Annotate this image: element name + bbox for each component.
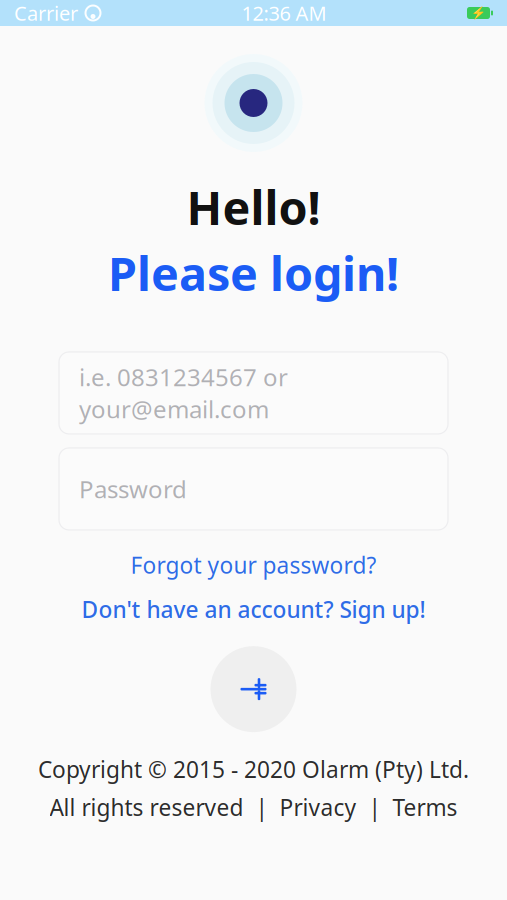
staticText: Copyright © 2015 - 2020 Olarm (Pty) Ltd.	[38, 754, 469, 784]
button[interactable]: Don't have an account? Sign up!	[71, 590, 435, 628]
button[interactable]: Forgot your password?	[120, 546, 386, 584]
staticText: Hello!	[186, 176, 320, 238]
staticText: Carrier	[14, 0, 78, 26]
staticText: Don't have an account? Sign up!	[81, 594, 425, 624]
staticText: i.e. 0831234567 or your@email.com	[79, 361, 288, 425]
staticText: 12:36 AM	[241, 0, 326, 26]
staticText: Please login!	[108, 242, 399, 304]
staticText: Password	[79, 473, 187, 505]
staticText: Forgot your password?	[130, 550, 376, 580]
staticText: All rights reserved | Privacy | Terms	[49, 792, 457, 822]
staticText: ⚡	[471, 6, 486, 20]
button[interactable]: Log in	[210, 646, 296, 732]
